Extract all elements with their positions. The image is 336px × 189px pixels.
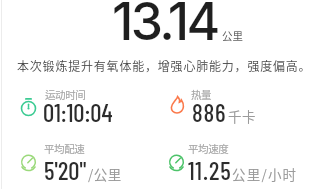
staticText: 13.14 <box>112 0 218 52</box>
staticText: 公里/小时 <box>232 164 298 184</box>
button[interactable]: 11.25 <box>188 155 298 185</box>
staticText: 千卡 <box>228 106 256 126</box>
button[interactable]: 5'20" <box>44 155 122 185</box>
button[interactable]: 886 <box>192 97 256 127</box>
staticText: 01:10:04 <box>43 97 113 127</box>
staticText: /公里 <box>88 164 122 184</box>
staticText: 平均配速 <box>44 141 85 156</box>
staticText: 11.25 <box>188 155 232 185</box>
button[interactable]: 01:10:04 <box>43 97 113 127</box>
staticText: 公里 <box>222 28 243 43</box>
staticText: 热量 <box>191 87 212 102</box>
staticText: 平均速度 <box>188 141 229 156</box>
staticText: 本次锻炼提升有氧体能，增强心肺能力，强度偏高。 <box>17 57 312 74</box>
staticText: 5'20" <box>44 155 87 185</box>
staticText: 运动时间 <box>45 87 86 102</box>
staticText: 886 <box>192 97 227 127</box>
